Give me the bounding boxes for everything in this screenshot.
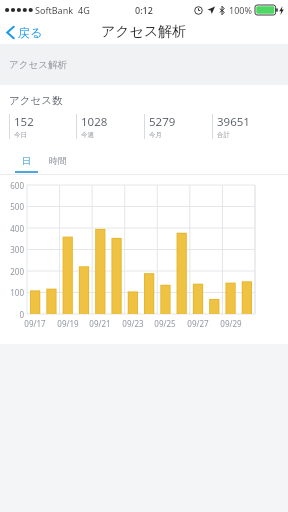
staticText: 09/23 bbox=[117, 318, 149, 329]
button[interactable]: 5279 bbox=[144, 114, 212, 139]
staticText: 09/29 bbox=[215, 318, 247, 329]
button[interactable]: 日 bbox=[15, 148, 38, 172]
staticText: 09/19 bbox=[52, 318, 84, 329]
staticText: 0:12 bbox=[135, 4, 153, 16]
staticText: 戻る bbox=[18, 25, 43, 40]
staticText: 39651 bbox=[217, 114, 250, 130]
staticText: 合計 bbox=[217, 131, 230, 139]
staticText: アクセス解析 bbox=[9, 59, 67, 71]
button[interactable]: 1028 bbox=[76, 114, 144, 139]
staticText: 152 bbox=[14, 114, 34, 130]
staticText: 300 bbox=[0, 244, 24, 255]
staticText: 今週 bbox=[81, 131, 94, 139]
staticText: 1028 bbox=[81, 114, 108, 130]
staticText: 500 bbox=[0, 201, 24, 212]
staticText: 今日 bbox=[14, 131, 27, 139]
staticText: 09/25 bbox=[149, 318, 181, 329]
button[interactable]: 時間 bbox=[45, 148, 71, 172]
staticText: 100 bbox=[0, 287, 24, 298]
staticText: アクセス数 bbox=[9, 94, 63, 107]
staticText: SoftBank bbox=[35, 4, 73, 16]
button[interactable]: 39651 bbox=[212, 114, 280, 139]
button[interactable]: 152 bbox=[9, 114, 76, 139]
staticText: 100% bbox=[229, 4, 252, 16]
staticText: 400 bbox=[0, 223, 24, 234]
staticText: 200 bbox=[0, 266, 24, 277]
staticText: 09/21 bbox=[84, 318, 116, 329]
staticText: 0 bbox=[0, 309, 24, 320]
staticText: 09/27 bbox=[182, 318, 214, 329]
staticText: 今月 bbox=[149, 131, 162, 139]
staticText: 日 bbox=[22, 155, 31, 166]
staticText: 4G bbox=[78, 4, 90, 16]
button[interactable]: 戻る bbox=[0, 20, 51, 44]
staticText: 600 bbox=[0, 180, 24, 191]
staticText: 5279 bbox=[149, 114, 176, 130]
staticText: アクセス解析 bbox=[101, 23, 187, 41]
staticText: 09/17 bbox=[19, 318, 51, 329]
staticText: 時間 bbox=[49, 155, 67, 166]
